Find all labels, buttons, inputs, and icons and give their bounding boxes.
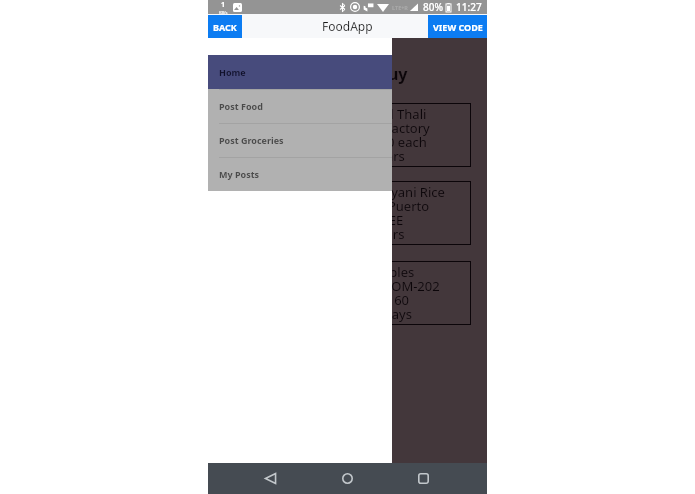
staticText: Things to buy <box>236 63 471 85</box>
staticText: Post Food <box>219 100 263 112</box>
button[interactable]: Special Thali Food Factory Rs. 100 each … <box>343 103 471 167</box>
button[interactable]: Back <box>255 463 286 494</box>
button[interactable]: Home <box>332 463 363 494</box>
staticText: LTE+R <box>392 4 408 11</box>
staticText: 11:27 <box>456 0 482 14</box>
button[interactable]: Apples ROOM-202 Rs. 60 2 days <box>365 261 471 325</box>
button[interactable]: Post Groceries <box>208 123 392 157</box>
staticText: My Posts <box>219 168 260 180</box>
staticText: Post Groceries <box>219 134 284 146</box>
staticText: Special Thali Food Factory Rs. 100 each … <box>351 105 430 165</box>
button[interactable]: Home <box>208 55 392 89</box>
staticText: Home <box>219 66 246 78</box>
button[interactable]: BACK <box>208 15 242 38</box>
button[interactable]: Post Food <box>208 89 392 123</box>
button[interactable]: VIEW CODE <box>428 15 487 38</box>
staticText: 1 <box>221 0 226 10</box>
staticText: KB/s <box>219 10 228 14</box>
staticText: 80% <box>423 0 443 14</box>
button[interactable]: Recent apps <box>408 463 439 494</box>
staticText: Apples ROOM-202 Rs. 60 2 days <box>373 263 440 323</box>
staticText: FoodApp <box>322 18 373 34</box>
button[interactable]: Biryani Rice El Puerto FREE 3 hrs <box>366 181 471 245</box>
staticText: BACK <box>213 21 237 33</box>
button[interactable]: My Posts <box>208 157 392 191</box>
staticText: Biryani Rice El Puerto FREE 3 hrs <box>374 183 445 243</box>
staticText: VIEW CODE <box>433 21 483 33</box>
